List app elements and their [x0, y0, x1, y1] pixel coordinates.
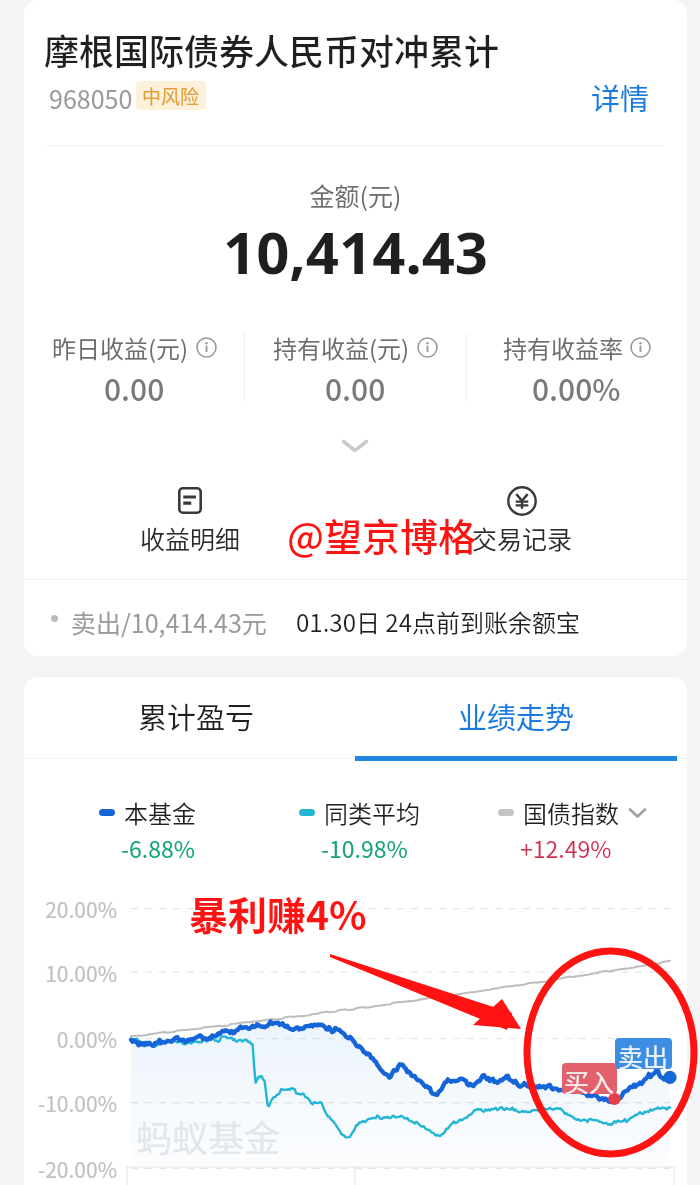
staticText: 本基金	[124, 795, 196, 830]
staticText: 摩根国际债券人民币对冲累计	[44, 24, 500, 75]
button[interactable]: 卖出/10,414.43元	[24, 580, 687, 656]
button[interactable]: 交易记录	[462, 486, 582, 556]
staticText: 10.00%	[24, 958, 117, 988]
staticText: 持有收益率	[503, 330, 623, 365]
staticText: -6.88%	[121, 831, 195, 864]
staticText: 968050	[49, 80, 133, 116]
staticText: 01.30日 24点前到账余额宝	[296, 604, 580, 639]
staticText: 卖出	[618, 1038, 669, 1069]
staticText: 卖出/10,414.43元	[71, 604, 267, 640]
button[interactable]: 累计盈亏	[136, 677, 256, 755]
staticText: 国债指数	[523, 795, 619, 830]
button[interactable]: 业绩走势	[456, 677, 576, 755]
button[interactable]: 本基金	[99, 795, 264, 864]
staticText: 业绩走势	[458, 695, 575, 737]
staticText: 收益明细	[140, 520, 241, 556]
button[interactable]: 持有收益率	[466, 330, 687, 409]
staticText: 中风险	[142, 82, 200, 110]
staticText: 持有收益(元)	[273, 330, 410, 365]
button[interactable]: 收益明细	[130, 487, 250, 556]
staticText: 20.00%	[24, 894, 117, 924]
button[interactable]: 昨日收益(元)	[24, 330, 245, 409]
staticText: 0.00	[104, 366, 165, 409]
button[interactable]: 同类平均	[299, 795, 464, 864]
staticText: 0.00%	[24, 1024, 117, 1054]
button[interactable]: 持有收益(元)	[245, 330, 466, 409]
staticText: 0.00%	[532, 366, 621, 409]
staticText: +12.49%	[520, 831, 612, 864]
button[interactable]: 国债指数	[498, 795, 663, 864]
staticText: -10.98%	[321, 831, 408, 864]
staticText: 蚂蚁基金	[136, 1110, 281, 1162]
staticText: -20.00%	[24, 1154, 117, 1184]
staticText: 暴利赚4%	[189, 885, 367, 941]
staticText: -10.00%	[24, 1088, 117, 1118]
staticText: @望京博格	[287, 507, 476, 562]
staticText: 10,414.43	[24, 212, 687, 291]
staticText: 昨日收益(元)	[52, 330, 189, 365]
staticText: 同类平均	[324, 795, 420, 830]
staticText: 详情	[591, 76, 650, 118]
staticText: 金额(元)	[24, 177, 687, 213]
staticText: 累计盈亏	[138, 695, 255, 737]
button[interactable]: 展开	[325, 430, 385, 462]
button[interactable]: 详情	[587, 72, 654, 122]
staticText: 买入	[564, 1063, 615, 1094]
staticText: 0.00	[325, 366, 386, 409]
staticText: 交易记录	[472, 520, 573, 556]
